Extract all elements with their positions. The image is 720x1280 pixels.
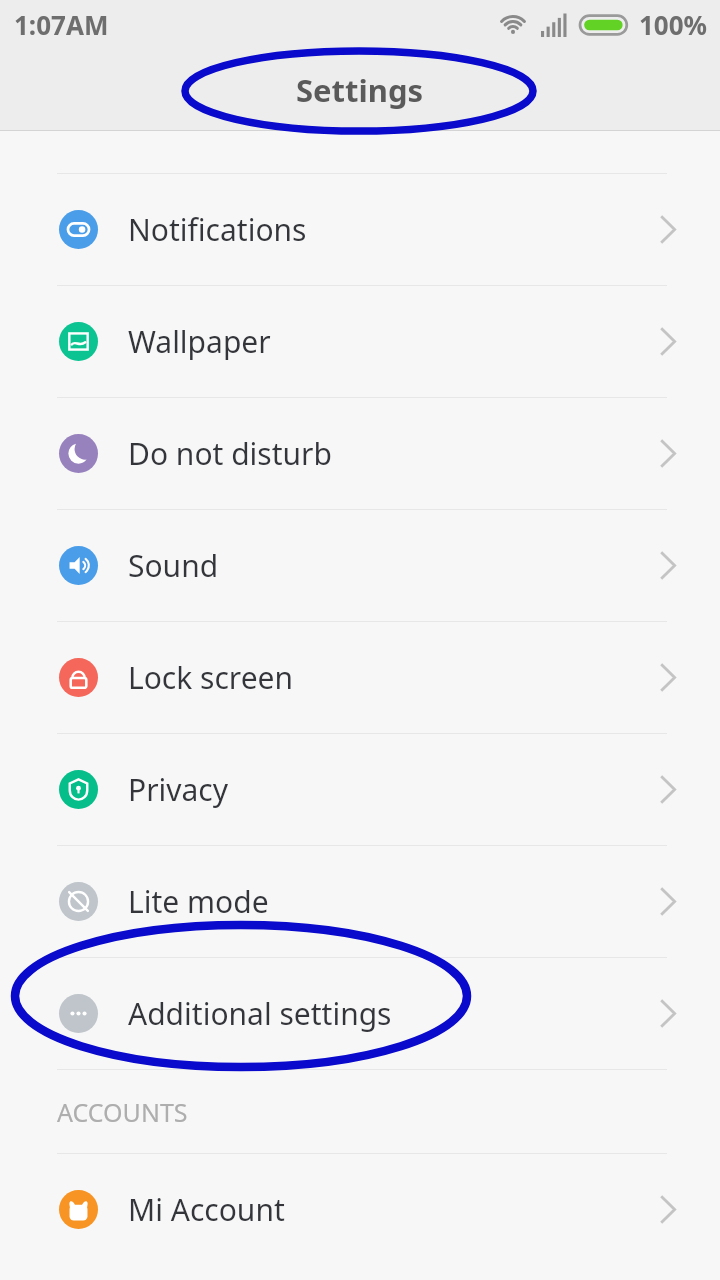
button[interactable]: Notifications (0, 174, 720, 285)
other: Open Mi Account (657, 1193, 678, 1226)
button[interactable]: Lite mode (0, 846, 720, 957)
staticText: Lock screen (128, 657, 657, 698)
button[interactable]: Lock screen (0, 622, 720, 733)
staticText: Wallpaper (128, 321, 657, 362)
staticText: Additional settings (128, 993, 657, 1034)
staticText: Privacy (128, 769, 657, 810)
staticText: Mi Account (128, 1189, 657, 1230)
button[interactable]: Do not disturb (0, 398, 720, 509)
button[interactable]: Additional settings (0, 958, 720, 1069)
staticText: Sound (128, 545, 657, 586)
staticText: ACCOUNTS (57, 1095, 188, 1129)
staticText: Lite mode (128, 881, 657, 922)
other: Open Lite mode (657, 885, 678, 918)
other: Open Notifications (657, 213, 678, 246)
button[interactable]: Mi Account (0, 1154, 720, 1265)
staticText: Settings (296, 69, 424, 111)
other: Open Lock screen (657, 661, 678, 694)
staticText: Do not disturb (128, 433, 657, 474)
staticText: 100% (639, 7, 708, 42)
other: Open Additional settings (657, 997, 678, 1030)
other: Open Wallpaper (657, 325, 678, 358)
other: Open Do not disturb (657, 437, 678, 470)
button[interactable]: Wallpaper (0, 286, 720, 397)
button[interactable]: Sound (0, 510, 720, 621)
button[interactable]: Privacy (0, 734, 720, 845)
other: Open Privacy (657, 773, 678, 806)
staticText: Notifications (128, 209, 657, 250)
staticText: 1:07AM (14, 7, 109, 42)
other: Open Sound (657, 549, 678, 582)
